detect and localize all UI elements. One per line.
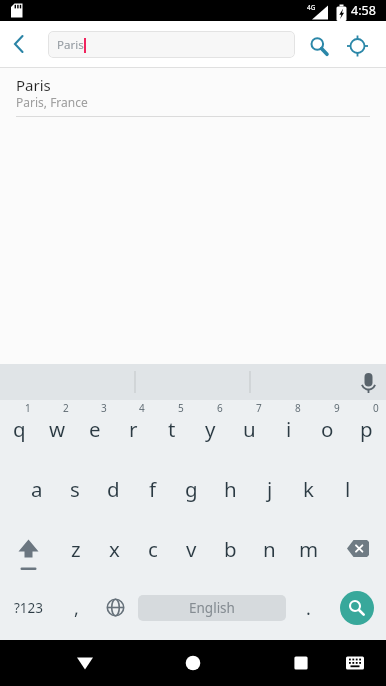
button[interactable]: 8 bbox=[269, 400, 308, 460]
staticText: 5 bbox=[178, 401, 184, 415]
button[interactable] bbox=[62, 640, 108, 686]
button[interactable] bbox=[96, 580, 135, 640]
button[interactable]: j bbox=[250, 460, 289, 520]
button[interactable]: 7 bbox=[230, 400, 269, 460]
staticText: Paris bbox=[57, 37, 84, 53]
button[interactable] bbox=[170, 640, 216, 686]
button[interactable]: v bbox=[172, 520, 211, 580]
staticText: g bbox=[185, 475, 198, 503]
staticText: . bbox=[306, 596, 311, 621]
staticText: 4G bbox=[307, 3, 316, 12]
button[interactable]: n bbox=[250, 520, 289, 580]
staticText: k bbox=[303, 475, 314, 503]
staticText: n bbox=[263, 535, 276, 563]
staticText: l bbox=[345, 475, 351, 503]
staticText: s bbox=[70, 475, 80, 503]
staticText: p bbox=[360, 415, 373, 443]
staticText: x bbox=[109, 535, 120, 563]
staticText: y bbox=[205, 415, 216, 443]
button[interactable]: 4 bbox=[114, 400, 152, 460]
staticText: t bbox=[168, 415, 176, 443]
staticText: English bbox=[189, 599, 235, 617]
staticText: j bbox=[267, 475, 273, 503]
button[interactable]: , bbox=[57, 580, 96, 640]
staticText: i bbox=[286, 415, 292, 443]
button[interactable]: ?123 bbox=[0, 580, 57, 640]
button[interactable]: h bbox=[211, 460, 250, 520]
button[interactable] bbox=[328, 520, 386, 580]
staticText: 1 bbox=[25, 401, 31, 415]
button[interactable]: a bbox=[18, 460, 56, 520]
button[interactable]: b bbox=[211, 520, 250, 580]
staticText: Paris bbox=[16, 75, 51, 95]
button[interactable]: g bbox=[172, 460, 211, 520]
staticText: z bbox=[71, 535, 81, 563]
button[interactable] bbox=[0, 520, 57, 580]
staticText: ?123 bbox=[14, 599, 44, 617]
button[interactable]: m bbox=[289, 520, 328, 580]
staticText: 0 bbox=[373, 401, 379, 415]
button[interactable]: 0 bbox=[347, 400, 386, 460]
staticText: q bbox=[13, 415, 26, 443]
staticText: u bbox=[243, 415, 256, 443]
button[interactable]: s bbox=[56, 460, 94, 520]
staticText: 4:58 bbox=[351, 2, 376, 19]
button[interactable]: English bbox=[138, 595, 286, 621]
button[interactable]: c bbox=[133, 520, 172, 580]
button[interactable] bbox=[278, 640, 324, 686]
button[interactable] bbox=[298, 24, 338, 64]
staticText: b bbox=[224, 535, 237, 563]
staticText: 6 bbox=[217, 401, 223, 415]
button[interactable]: 2 bbox=[38, 400, 76, 460]
staticText: a bbox=[31, 475, 43, 503]
staticText: h bbox=[224, 475, 237, 503]
staticText: f bbox=[149, 475, 157, 503]
button[interactable]: l bbox=[328, 460, 367, 520]
button[interactable]: f bbox=[133, 460, 172, 520]
button[interactable]: Paris bbox=[0, 68, 386, 116]
button[interactable]: 6 bbox=[191, 400, 230, 460]
button[interactable] bbox=[0, 24, 40, 64]
staticText: , bbox=[74, 596, 79, 621]
button[interactable] bbox=[340, 591, 374, 625]
button[interactable]: d bbox=[94, 460, 133, 520]
staticText: 9 bbox=[334, 401, 340, 415]
staticText: 2 bbox=[63, 401, 69, 415]
staticText: c bbox=[148, 535, 158, 563]
staticText: w bbox=[49, 415, 66, 443]
staticText: 3 bbox=[101, 401, 107, 415]
button[interactable]: 3 bbox=[76, 400, 114, 460]
button[interactable]: 9 bbox=[308, 400, 347, 460]
staticText: Paris, France bbox=[16, 94, 88, 110]
button[interactable] bbox=[250, 364, 386, 400]
staticText: d bbox=[107, 475, 120, 503]
staticText: o bbox=[321, 415, 334, 443]
button[interactable]: 5 bbox=[152, 400, 191, 460]
staticText: r bbox=[129, 415, 138, 443]
button[interactable]: k bbox=[289, 460, 328, 520]
staticText: v bbox=[186, 535, 197, 563]
staticText: 8 bbox=[295, 401, 301, 415]
staticText: e bbox=[89, 415, 101, 443]
staticText: 7 bbox=[256, 401, 262, 415]
button[interactable]: x bbox=[95, 520, 133, 580]
staticText: m bbox=[299, 535, 319, 563]
button[interactable]: Paris bbox=[48, 31, 295, 58]
button[interactable]: z bbox=[57, 520, 95, 580]
button[interactable]: 1 bbox=[0, 400, 38, 460]
staticText: 4 bbox=[139, 401, 145, 415]
button[interactable] bbox=[332, 640, 378, 686]
button[interactable] bbox=[337, 24, 377, 64]
button[interactable]: . bbox=[289, 580, 328, 640]
